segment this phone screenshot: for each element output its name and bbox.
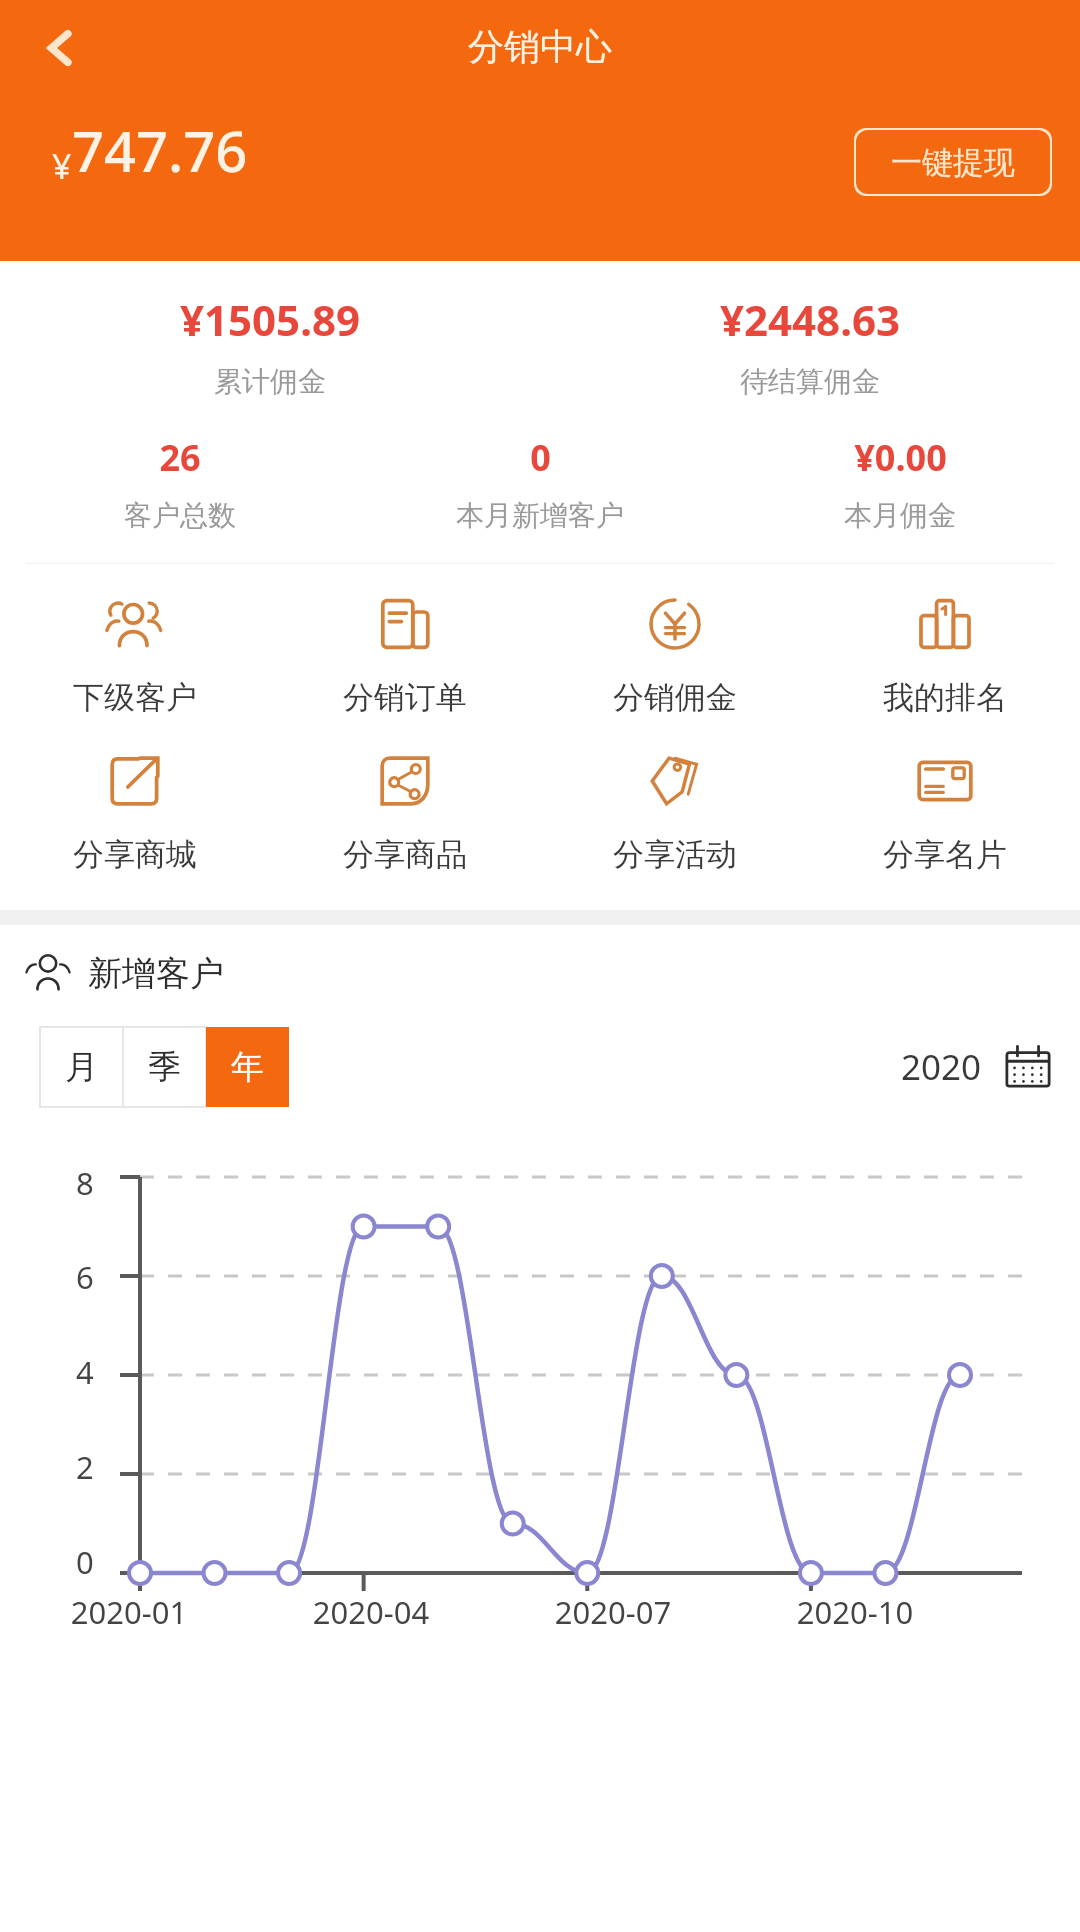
staticText: 2 [76,1446,94,1488]
staticText: 6 [76,1256,94,1298]
staticText: 分销佣金 [613,678,737,717]
staticText: 0 [76,1541,94,1583]
staticText: 2020 [901,1043,982,1091]
other: Pick year [1004,1043,1052,1091]
button[interactable]: 分销佣金 [540,594,810,717]
button[interactable]: 新增客户 [24,949,1080,997]
button[interactable]: 季 [123,1027,206,1107]
staticText: 客户总数 [124,498,236,533]
staticText: 分销订单 [343,678,467,717]
staticText: 分销中心 [468,24,612,69]
button[interactable]: 我的排名 [810,594,1080,717]
staticText: 一键提现 [891,143,1015,182]
staticText: 26 [159,433,201,482]
staticText: 2020-10 [734,1591,976,1633]
staticText: 月 [65,1046,98,1088]
button[interactable]: 月 [40,1027,123,1107]
button[interactable]: 一键提现 [854,128,1052,196]
staticText: ¥ [52,143,72,189]
staticText: 本月新增客户 [456,498,624,533]
button[interactable]: ¥1505.89 [0,291,540,399]
staticText: 我的排名 [883,678,1007,717]
button[interactable]: 分销订单 [270,594,540,717]
staticText: ¥1505.89 [180,291,360,348]
button[interactable]: Back [20,8,100,88]
staticText: 4 [76,1351,94,1393]
staticText: 分享商城 [73,835,197,874]
staticText: 季 [148,1046,181,1088]
staticText: 2020-04 [250,1591,492,1633]
staticText: 下级客户 [73,678,197,717]
button[interactable]: 分享名片 [810,751,1080,874]
staticText: ¥2448.63 [720,291,900,348]
button[interactable]: 分享商品 [270,751,540,874]
staticText: 累计佣金 [214,364,326,399]
staticText: 747.76 [72,112,248,188]
button[interactable]: 26 [0,433,360,533]
button[interactable]: 2020 [901,1043,1052,1091]
staticText: 分享名片 [883,835,1007,874]
staticText: 分享商品 [343,835,467,874]
button[interactable]: 年 [206,1027,289,1107]
staticText: 待结算佣金 [740,364,880,399]
button[interactable]: 分享活动 [540,751,810,874]
staticText: 本月佣金 [844,498,956,533]
staticText: 分享活动 [613,835,737,874]
staticText: 8 [76,1162,94,1204]
staticText: 2020-07 [492,1591,734,1633]
staticText: 新增客户 [88,952,224,995]
button[interactable]: 0 [360,433,720,533]
button[interactable]: ¥0.00 [720,433,1080,533]
staticText: 0 [530,433,551,482]
staticText: 年 [231,1046,264,1088]
button[interactable]: 分享商城 [0,751,270,874]
staticText: 2020-01 [8,1591,250,1633]
button[interactable]: 下级客户 [0,594,270,717]
staticText: ¥0.00 [854,433,947,482]
button[interactable]: ¥2448.63 [540,291,1080,399]
